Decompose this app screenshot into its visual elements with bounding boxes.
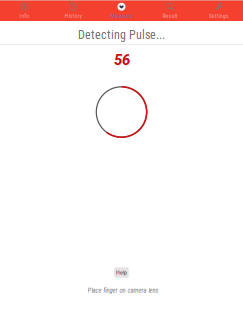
staticText: Help [116,269,127,276]
button[interactable]: Help [114,267,129,278]
button[interactable]: Result [146,1,194,21]
staticText: Info [19,12,29,19]
button[interactable]: Settings [194,1,243,21]
staticText: Place finger on camera lens [87,287,158,294]
staticText: Detecting Pulse... [78,28,165,42]
button[interactable]: Info [0,1,49,21]
staticText: History [64,12,81,19]
staticText: Result [163,12,178,19]
staticText: 56 [115,52,131,70]
button[interactable]: History [49,1,97,21]
button[interactable]: Measure [97,1,146,21]
staticText: 56 [114,51,130,69]
staticText: Settings [209,12,229,19]
staticText: Measure [110,12,132,19]
